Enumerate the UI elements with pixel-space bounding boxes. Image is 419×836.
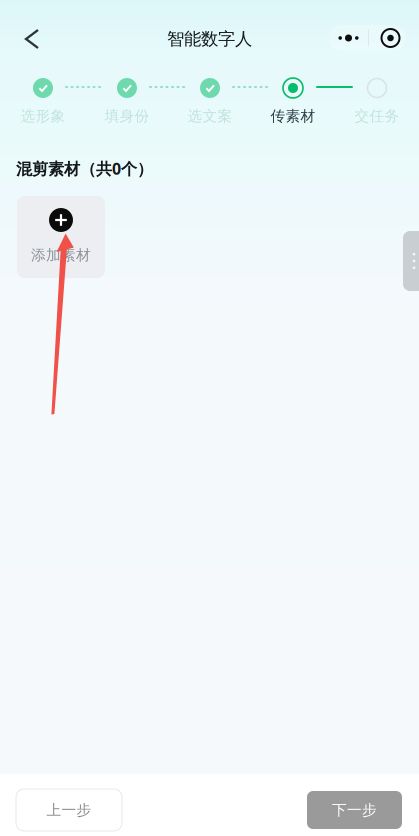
button[interactable]: 上一步 — [16, 789, 122, 831]
staticText: 填身份 — [104, 107, 149, 125]
button[interactable]: Back — [10, 17, 54, 61]
staticText: 上一步 — [46, 801, 91, 819]
button[interactable]: Close mini program — [369, 25, 406, 51]
staticText: 选文案 — [187, 107, 232, 125]
button[interactable]: Open side panel — [403, 231, 419, 291]
staticText: 下一步 — [332, 801, 377, 819]
staticText: 智能数字人 — [167, 28, 252, 50]
staticText: 选形象 — [20, 107, 65, 125]
staticText: 传素材 — [270, 107, 315, 125]
staticText: 交任务 — [354, 107, 399, 125]
button[interactable]: 下一步 — [307, 791, 402, 829]
button[interactable]: 添加素材 — [17, 196, 105, 278]
staticText: 混剪素材（共0个） — [16, 158, 153, 179]
button[interactable]: More options — [329, 25, 368, 51]
staticText: 添加素材 — [31, 246, 91, 264]
